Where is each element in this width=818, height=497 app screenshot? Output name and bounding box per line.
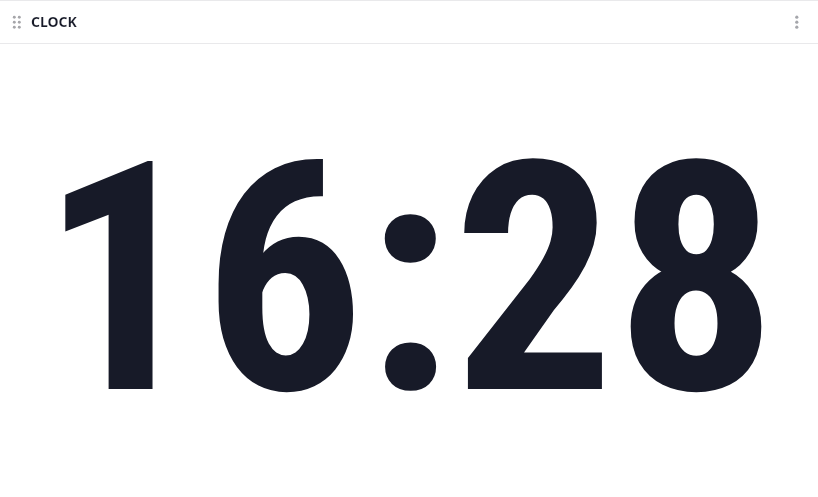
button[interactable]: More options xyxy=(776,0,818,43)
staticText: 16:28 xyxy=(0,92,818,467)
button[interactable]: Drag handle xyxy=(4,0,30,43)
button[interactable]: CLOCK xyxy=(31,12,77,31)
